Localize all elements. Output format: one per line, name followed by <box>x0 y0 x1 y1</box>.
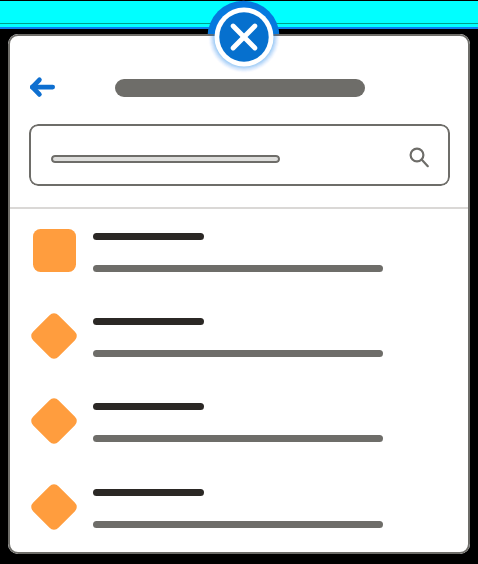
button[interactable] <box>8 385 470 470</box>
other: Search <box>403 141 431 169</box>
button[interactable]: Back <box>21 68 65 106</box>
button[interactable] <box>8 300 470 385</box>
button[interactable] <box>8 471 470 554</box>
button[interactable] <box>8 215 470 300</box>
button[interactable]: Close <box>204 0 284 77</box>
button[interactable]: Search <box>29 124 450 186</box>
